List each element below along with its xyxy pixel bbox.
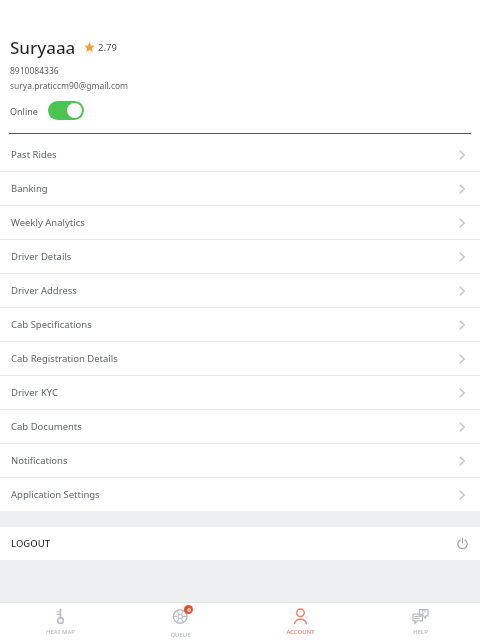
staticText: Cab Registration Details [11, 352, 118, 365]
staticText: HEAT MAP [46, 628, 75, 636]
button[interactable]: Driver Details [0, 240, 480, 273]
staticText: Online [10, 105, 38, 117]
button[interactable]: Banking [0, 172, 480, 205]
staticText: Cab Specifications [11, 318, 92, 331]
button[interactable]: LOGOUT [0, 527, 480, 560]
staticText: ACCOUNT [286, 628, 315, 636]
button[interactable]: Cab Documents [0, 410, 480, 443]
staticText: 2.79 [98, 41, 117, 54]
staticText: Driver Address [11, 284, 77, 297]
button[interactable]: ACCOUNT [240, 608, 360, 636]
button[interactable]: Cab Registration Details [0, 342, 480, 375]
button[interactable]: Weekly Analytics [0, 206, 480, 239]
staticText: Driver Details [11, 250, 72, 263]
button[interactable]: Past Rides [0, 138, 480, 171]
staticText: 8910084336 [10, 65, 59, 77]
staticText: LOGOUT [11, 537, 51, 550]
button[interactable]: Notifications [0, 444, 480, 477]
staticText: HELP [413, 628, 428, 636]
staticText: Driver KYC [11, 386, 58, 399]
button[interactable]: Driver Address [0, 274, 480, 307]
staticText: 0 [187, 606, 191, 613]
button[interactable] [48, 101, 84, 120]
staticText: Past Rides [11, 148, 57, 161]
button[interactable]: Cab Specifications [0, 308, 480, 341]
button[interactable]: Application Settings [0, 478, 480, 511]
staticText: Notifications [11, 454, 68, 467]
staticText: Banking [11, 182, 48, 195]
staticText: surya.praticcm90@gmail.com [10, 80, 129, 92]
button[interactable]: Driver KYC [0, 376, 480, 409]
button[interactable]: HEAT MAP [0, 608, 120, 636]
staticText: QUEUE [170, 631, 191, 639]
staticText: Suryaaa [10, 36, 76, 59]
button[interactable]: QUEUE [120, 605, 240, 639]
staticText: Application Settings [11, 488, 100, 501]
staticText: Weekly Analytics [11, 216, 85, 229]
button[interactable]: HELP [360, 608, 480, 636]
staticText: Cab Documents [11, 420, 82, 433]
